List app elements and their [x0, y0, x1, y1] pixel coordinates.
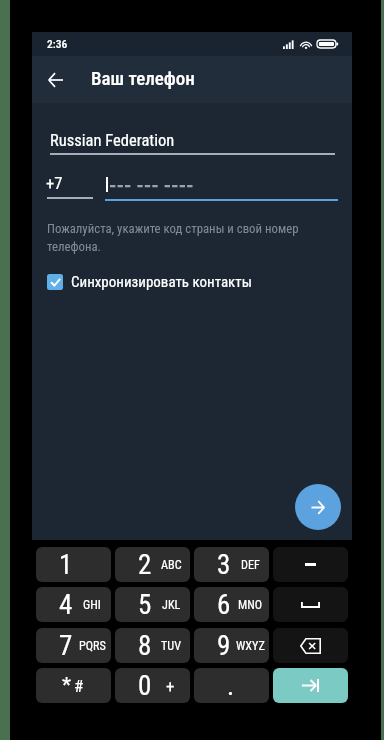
button[interactable]: .	[194, 668, 269, 703]
staticText: 5	[138, 589, 152, 621]
staticText: #	[74, 676, 84, 696]
other: Space	[301, 602, 320, 608]
button[interactable]: Next	[295, 484, 341, 530]
button[interactable]: 3	[194, 547, 269, 582]
staticText: 3	[217, 549, 231, 581]
staticText: GHI	[83, 598, 101, 612]
button[interactable]: 8	[115, 628, 190, 663]
button[interactable]: Space	[273, 587, 348, 622]
staticText: 8	[138, 630, 152, 662]
button[interactable]: Backspace	[273, 628, 348, 663]
staticText: .	[227, 670, 235, 702]
staticText: 2:36	[47, 37, 68, 50]
staticText: DEF	[241, 558, 260, 572]
staticText: 7	[59, 630, 73, 662]
staticText: 1	[59, 549, 73, 581]
staticText: JKL	[162, 598, 181, 612]
button[interactable]: 9	[194, 628, 269, 663]
staticText: Синхронизировать контакты	[71, 273, 252, 291]
button[interactable]: *	[36, 668, 111, 703]
staticText: WXYZ	[236, 639, 265, 653]
staticText: 6	[217, 589, 231, 621]
staticText: Russian Federation	[50, 131, 175, 150]
staticText: TUV	[161, 639, 182, 653]
staticText: +7	[46, 174, 63, 193]
staticText: *	[62, 673, 72, 698]
other: Backspace	[300, 638, 321, 654]
staticText: 9	[217, 630, 231, 662]
staticText: MNO	[238, 598, 263, 612]
staticText: Пожалуйста, укажите код страны и свой но…	[47, 221, 339, 254]
button[interactable]: Синхронизировать контакты	[47, 273, 252, 291]
button[interactable]: 6	[194, 587, 269, 622]
staticText: 4	[59, 589, 73, 621]
staticText: 0	[138, 670, 152, 702]
button[interactable]: Enter	[273, 668, 348, 703]
staticText: 2	[138, 549, 152, 581]
button[interactable]: Dash	[273, 547, 348, 582]
other: Enter	[302, 679, 319, 692]
staticText: PQRS	[79, 639, 106, 653]
button[interactable]: 2	[115, 547, 190, 582]
staticText: Ваш телефон	[91, 67, 195, 89]
button[interactable]: 5	[115, 587, 190, 622]
button[interactable]: 1	[36, 547, 111, 582]
button[interactable]: Back	[34, 59, 76, 101]
staticText: +	[166, 676, 175, 696]
button[interactable]: 4	[36, 587, 111, 622]
staticText: ABC	[161, 558, 182, 572]
button[interactable]: 7	[36, 628, 111, 663]
button[interactable]: 0	[115, 668, 190, 703]
